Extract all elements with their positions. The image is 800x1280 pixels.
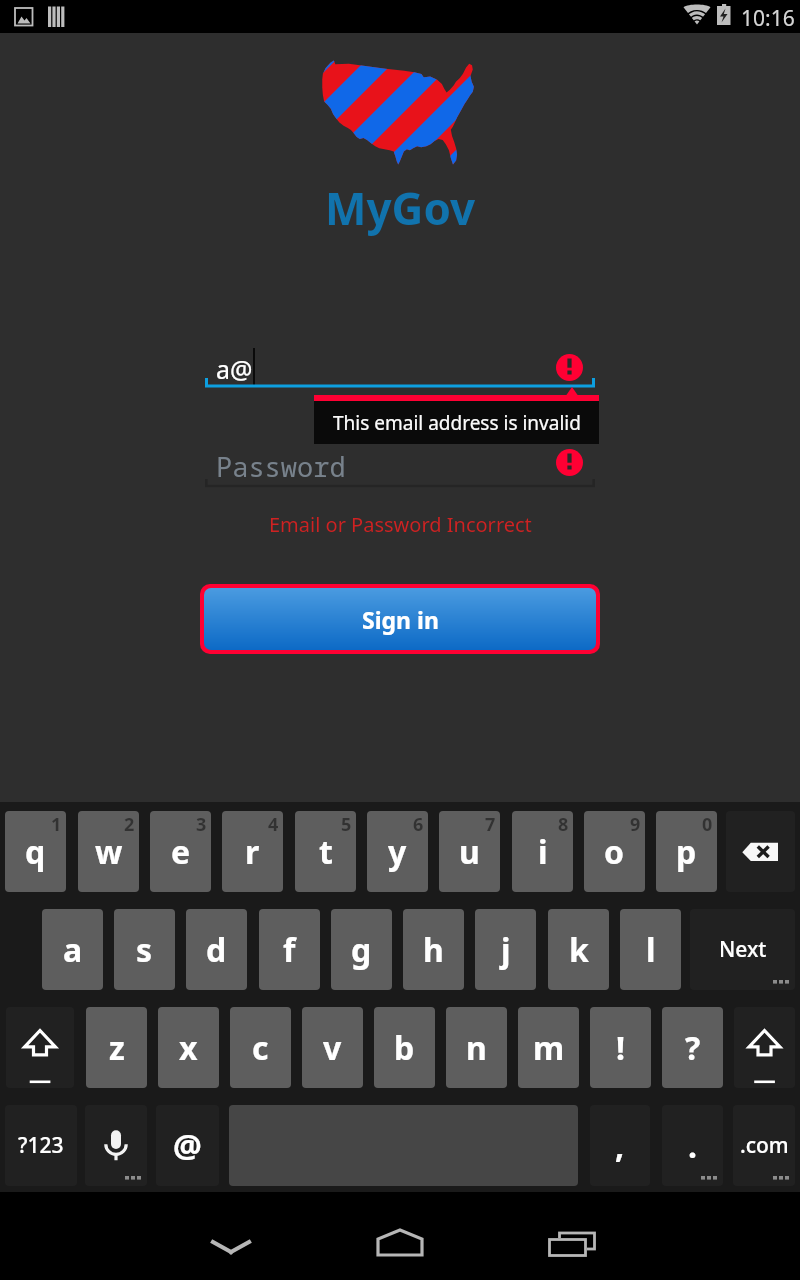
staticText: Email or Password Incorrect: [269, 511, 532, 538]
button[interactable]: @: [156, 1105, 219, 1186]
staticText: 8: [558, 812, 569, 837]
staticText: MyGov: [325, 178, 476, 238]
staticText: 0: [702, 812, 713, 837]
button[interactable]: j: [475, 909, 536, 990]
staticText: 6: [413, 812, 424, 837]
staticText: Next: [719, 935, 767, 964]
staticText: d: [206, 928, 227, 972]
staticText: h: [423, 928, 444, 972]
staticText: f: [283, 928, 296, 972]
staticText: ,: [615, 1124, 625, 1168]
staticText: a: [63, 928, 83, 972]
button[interactable]: o: [584, 811, 645, 892]
staticText: e: [171, 830, 191, 874]
button[interactable]: e: [150, 811, 211, 892]
staticText: .com: [740, 1131, 789, 1160]
staticText: r: [245, 830, 260, 874]
button[interactable]: n: [446, 1007, 507, 1088]
staticText: y: [388, 830, 407, 874]
button[interactable]: f: [259, 909, 320, 990]
button[interactable]: !: [590, 1007, 651, 1088]
staticText: t: [319, 830, 333, 874]
button[interactable]: ?: [662, 1007, 723, 1088]
button[interactable]: i: [512, 811, 573, 892]
button[interactable]: w: [78, 811, 139, 892]
staticText: o: [604, 830, 625, 874]
button[interactable]: d: [186, 909, 247, 990]
button[interactable]: q: [5, 811, 66, 892]
staticText: j: [501, 928, 511, 972]
staticText: u: [459, 830, 480, 874]
staticText: k: [569, 928, 589, 972]
staticText: 2: [124, 812, 135, 837]
button[interactable]: v: [302, 1007, 363, 1088]
button[interactable]: [734, 1007, 795, 1088]
button[interactable]: z: [86, 1007, 147, 1088]
button[interactable]: [726, 811, 795, 892]
staticText: @: [173, 1124, 202, 1168]
button[interactable]: Hide keyboard: [171, 1192, 291, 1280]
button[interactable]: .: [662, 1105, 723, 1186]
staticText: q: [25, 830, 46, 874]
button[interactable]: a: [42, 909, 103, 990]
staticText: l: [646, 928, 656, 972]
staticText: g: [351, 928, 372, 972]
button[interactable]: x: [158, 1007, 219, 1088]
button[interactable]: b: [374, 1007, 435, 1088]
button[interactable]: s: [114, 909, 175, 990]
button[interactable]: ,: [590, 1105, 650, 1186]
staticText: w: [95, 830, 123, 874]
button[interactable]: c: [230, 1007, 291, 1088]
staticText: 3: [196, 812, 207, 837]
staticText: 10:16: [741, 4, 795, 33]
staticText: m: [533, 1026, 565, 1070]
button[interactable]: [85, 1105, 147, 1186]
staticText: c: [252, 1026, 269, 1070]
button[interactable]: Recent apps: [512, 1192, 632, 1280]
staticText: a@: [216, 352, 253, 386]
button[interactable]: [6, 1007, 74, 1088]
button[interactable]: h: [403, 909, 464, 990]
staticText: ?123: [18, 1131, 64, 1160]
staticText: Password: [216, 448, 346, 485]
staticText: 4: [268, 812, 279, 837]
staticText: x: [179, 1026, 198, 1070]
staticText: Sign in: [362, 604, 439, 635]
staticText: 7: [485, 812, 496, 837]
button[interactable]: ?123: [5, 1105, 77, 1186]
staticText: 9: [630, 812, 641, 837]
button[interactable]: t: [295, 811, 356, 892]
staticText: 5: [341, 812, 352, 837]
button[interactable]: u: [439, 811, 500, 892]
staticText: 1: [51, 812, 62, 837]
staticText: z: [109, 1026, 125, 1070]
staticText: This email address is invalid: [333, 410, 581, 436]
button[interactable]: Next: [690, 909, 795, 990]
button[interactable]: p: [656, 811, 717, 892]
staticText: v: [323, 1026, 342, 1070]
button[interactable]: r: [222, 811, 283, 892]
button[interactable]: .com: [733, 1105, 795, 1186]
staticText: s: [136, 928, 153, 972]
button[interactable]: m: [518, 1007, 579, 1088]
staticText: ?: [685, 1026, 701, 1070]
button[interactable]: y: [367, 811, 428, 892]
button[interactable]: g: [331, 909, 392, 990]
staticText: p: [676, 830, 697, 874]
staticText: !: [616, 1026, 626, 1070]
staticText: i: [538, 830, 548, 874]
staticText: b: [394, 1026, 415, 1070]
staticText: n: [466, 1026, 487, 1070]
staticText: .: [688, 1124, 697, 1168]
button[interactable]: l: [620, 909, 681, 990]
button[interactable]: Home: [340, 1192, 460, 1280]
button[interactable]: k: [548, 909, 609, 990]
button[interactable]: Sign in: [200, 584, 600, 654]
